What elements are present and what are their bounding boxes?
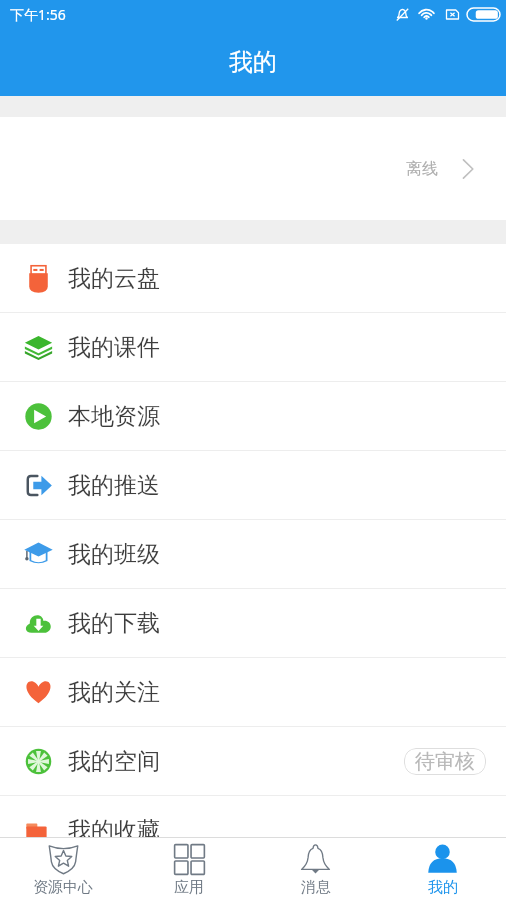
staticText: 我的	[229, 47, 277, 77]
staticText: 离线	[406, 159, 438, 179]
staticText: 我的收藏	[68, 816, 160, 837]
staticText: 我的下载	[68, 609, 160, 638]
staticText: 资源中心	[33, 878, 93, 897]
button[interactable]: 我的收藏	[0, 796, 506, 837]
staticText: 我的关注	[68, 678, 160, 707]
staticText: 我的班级	[68, 540, 160, 569]
staticText: 应用	[174, 878, 204, 897]
button[interactable]: 我的关注	[0, 658, 506, 726]
button[interactable]: 应用	[126, 838, 252, 897]
button[interactable]: 离线	[0, 117, 506, 220]
staticText: 本地资源	[68, 402, 160, 431]
button[interactable]: 我的下载	[0, 589, 506, 657]
button[interactable]: 我的	[379, 838, 506, 897]
staticText: 我的推送	[68, 471, 160, 500]
button[interactable]: 资源中心	[0, 838, 126, 897]
button[interactable]: 我的云盘	[0, 244, 506, 312]
button[interactable]: 我的空间	[0, 727, 506, 795]
button[interactable]: 我的课件	[0, 313, 506, 381]
staticText: 下午1:56	[10, 5, 66, 24]
staticText: 待审核	[415, 749, 475, 774]
staticText: 消息	[301, 878, 331, 897]
staticText: 我的课件	[68, 333, 160, 362]
button[interactable]: 消息	[252, 838, 379, 897]
staticText: 我的云盘	[68, 264, 160, 293]
staticText: 我的空间	[68, 747, 160, 776]
button[interactable]: 我的推送	[0, 451, 506, 519]
button[interactable]: 本地资源	[0, 382, 506, 450]
button[interactable]: 我的班级	[0, 520, 506, 588]
staticText: 我的	[428, 878, 458, 897]
